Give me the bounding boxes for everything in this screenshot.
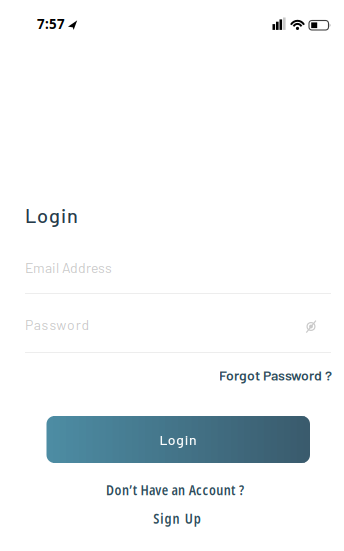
button[interactable]: Sign Up <box>153 509 201 528</box>
staticText: Password <box>25 316 90 333</box>
staticText: Sign Up <box>153 509 201 528</box>
staticText: Don’t Have an Account ? <box>106 481 244 499</box>
staticText: 7:57 <box>37 15 65 33</box>
staticText: Forgot Password ? <box>219 366 332 383</box>
staticText: Login <box>25 203 78 227</box>
staticText: Email Address <box>25 259 112 276</box>
button[interactable]: Password <box>25 316 331 353</box>
button[interactable]: Forgot Password ? <box>219 366 332 383</box>
button[interactable]: Show Password <box>303 319 318 334</box>
button[interactable]: Login <box>46 416 310 463</box>
button[interactable]: Email Address <box>25 259 331 294</box>
staticText: Login <box>159 431 197 448</box>
